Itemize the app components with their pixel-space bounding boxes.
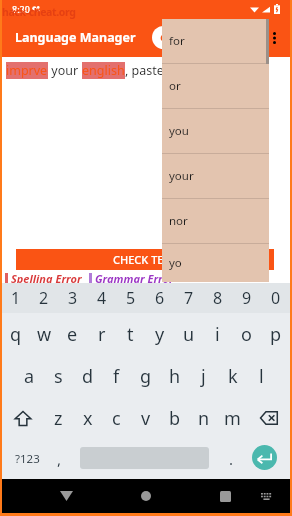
staticText: Language Manager bbox=[15, 29, 136, 46]
button[interactable]: y bbox=[145, 313, 174, 355]
button[interactable]: i bbox=[203, 313, 232, 355]
button[interactable]: 2 bbox=[30, 283, 58, 313]
staticText: z bbox=[54, 406, 63, 431]
button[interactable]: h bbox=[160, 355, 189, 397]
staticText: 2 bbox=[39, 287, 49, 309]
button[interactable]: u bbox=[174, 313, 203, 355]
button[interactable]: f bbox=[102, 355, 131, 397]
staticText: 4 bbox=[97, 287, 107, 309]
button[interactable]: nor bbox=[162, 199, 269, 243]
button[interactable]: 3 bbox=[58, 283, 87, 313]
button[interactable]: p bbox=[261, 313, 290, 355]
button[interactable]: Back bbox=[52, 479, 80, 513]
button[interactable]: t bbox=[116, 313, 145, 355]
staticText: your bbox=[169, 168, 194, 184]
button[interactable]: x bbox=[73, 397, 102, 439]
staticText: n bbox=[198, 406, 210, 431]
button[interactable]: l bbox=[247, 355, 276, 397]
staticText: g bbox=[140, 364, 152, 389]
staticText: q bbox=[10, 322, 22, 347]
button[interactable]: b bbox=[160, 397, 189, 439]
button[interactable]: a bbox=[15, 355, 44, 397]
button[interactable]: 7 bbox=[174, 283, 203, 313]
staticText: 5 bbox=[126, 287, 136, 309]
staticText: t bbox=[127, 322, 134, 347]
button[interactable]: Backspace bbox=[247, 397, 290, 439]
staticText: CHECK TEXT bbox=[113, 252, 177, 267]
button[interactable]: 5 bbox=[116, 283, 145, 313]
staticText: english bbox=[82, 62, 125, 79]
staticText: h bbox=[169, 364, 181, 389]
staticText: Grammar Error bbox=[95, 271, 174, 286]
staticText: ?123 bbox=[15, 451, 40, 467]
button[interactable]: o bbox=[232, 313, 261, 355]
staticText: i bbox=[215, 322, 220, 347]
staticText: u bbox=[183, 322, 195, 347]
button[interactable]: your bbox=[162, 154, 269, 198]
button[interactable]: s bbox=[44, 355, 73, 397]
button[interactable]: 1 bbox=[2, 283, 30, 313]
staticText: . bbox=[229, 449, 234, 469]
button[interactable]: Enter bbox=[252, 445, 277, 470]
button[interactable]: 0 bbox=[261, 283, 290, 313]
button[interactable]: 9 bbox=[232, 283, 261, 313]
button[interactable]: or bbox=[162, 64, 269, 108]
button[interactable]: ?123 bbox=[13, 439, 41, 479]
button[interactable]: 8 bbox=[203, 283, 232, 313]
staticText: w bbox=[37, 322, 52, 347]
staticText: yo bbox=[169, 255, 182, 271]
button[interactable]: for bbox=[162, 19, 269, 63]
staticText: v bbox=[141, 406, 151, 431]
staticText: hack-cheat.org bbox=[2, 5, 76, 19]
staticText: m bbox=[224, 406, 241, 431]
button[interactable]: yo bbox=[162, 244, 269, 282]
staticText: or bbox=[169, 78, 181, 94]
staticText: 8:30 bbox=[12, 3, 30, 15]
button[interactable]: z bbox=[44, 397, 73, 439]
button[interactable]: j bbox=[189, 355, 218, 397]
button[interactable]: d bbox=[73, 355, 102, 397]
button[interactable]: 6 bbox=[145, 283, 174, 313]
button[interactable]: , bbox=[45, 439, 73, 479]
button[interactable]: q bbox=[2, 313, 30, 355]
button[interactable]: Home bbox=[132, 479, 160, 513]
staticText: 0 bbox=[271, 287, 281, 309]
button[interactable]: g bbox=[131, 355, 160, 397]
button[interactable]: c bbox=[102, 397, 131, 439]
button[interactable]: v bbox=[131, 397, 160, 439]
button[interactable]: More options bbox=[262, 26, 286, 50]
staticText: p bbox=[270, 322, 282, 347]
staticText: x bbox=[83, 406, 93, 431]
button[interactable]: Switch keyboard bbox=[253, 479, 279, 513]
button[interactable]: Recents bbox=[211, 479, 239, 513]
staticText: 8 bbox=[213, 287, 223, 309]
staticText: e bbox=[67, 322, 78, 347]
button[interactable]: w bbox=[30, 313, 58, 355]
button[interactable]: k bbox=[218, 355, 247, 397]
staticText: l bbox=[259, 364, 264, 389]
button[interactable]: you bbox=[162, 109, 269, 153]
staticText: r bbox=[98, 322, 106, 347]
button[interactable]: n bbox=[189, 397, 218, 439]
staticText: y bbox=[155, 322, 165, 347]
staticText: 6 bbox=[155, 287, 165, 309]
button[interactable]: m bbox=[218, 397, 247, 439]
button[interactable]: CHECK TEXT bbox=[16, 249, 274, 270]
button[interactable]: 4 bbox=[87, 283, 116, 313]
staticText: 1 bbox=[11, 287, 21, 309]
staticText: 7 bbox=[184, 287, 194, 309]
staticText: o bbox=[241, 322, 252, 347]
button[interactable]: e bbox=[58, 313, 87, 355]
button[interactable]: Shift bbox=[2, 397, 44, 439]
staticText: d bbox=[82, 364, 94, 389]
staticText: 3 bbox=[68, 287, 78, 309]
button[interactable]: . bbox=[217, 439, 245, 479]
staticText: j bbox=[201, 364, 206, 389]
staticText: c bbox=[112, 406, 121, 431]
staticText: , bbox=[57, 449, 62, 469]
staticText: s bbox=[54, 364, 63, 389]
staticText: 9 bbox=[242, 287, 252, 309]
button[interactable]: r bbox=[87, 313, 116, 355]
staticText: Spelling Error bbox=[11, 271, 82, 286]
